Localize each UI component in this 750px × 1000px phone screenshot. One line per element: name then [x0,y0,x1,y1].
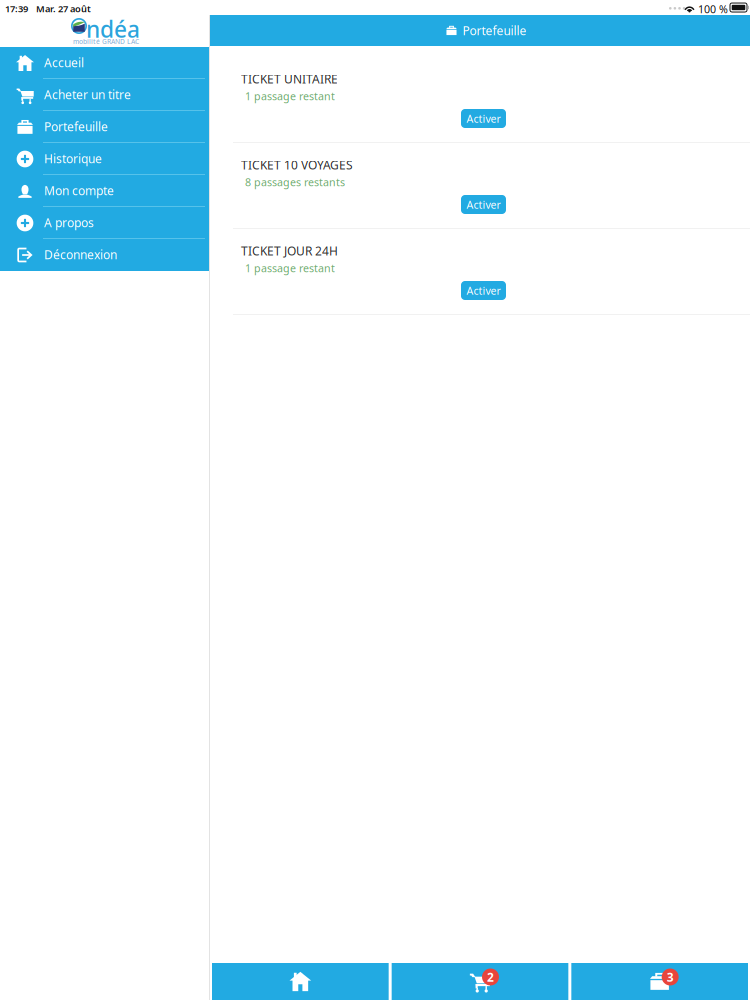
button[interactable]: A propos [0,207,209,239]
staticText: 1 passage restant [245,261,335,275]
staticText: TICKET UNITAIRE [241,71,338,87]
button[interactable]: Panier [392,963,568,1000]
staticText: Activer [466,197,500,212]
button[interactable]: Activer [461,281,506,300]
staticText: Activer [466,283,500,298]
staticText: TICKET JOUR 24H [241,243,338,259]
staticText: Mar. 27 août [36,2,91,15]
staticText: Portefeuille [44,118,108,134]
button[interactable]: Accueil [212,963,389,1000]
staticText: 17:39 [5,2,28,15]
staticText: Portefeuille [462,22,526,38]
button[interactable]: Portefeuille [0,111,209,143]
staticText: 8 passages restants [245,175,345,189]
staticText: Acheter un titre [44,86,131,102]
staticText: Déconnexion [44,246,117,262]
button[interactable]: Historique [0,143,209,175]
staticText: TICKET 10 VOYAGES [241,157,353,173]
staticText: A propos [44,214,94,230]
button[interactable]: Activer [461,195,506,214]
staticText: Activer [466,111,500,126]
staticText: 2 [487,969,494,985]
button[interactable]: Acheter un titre [0,79,209,111]
staticText: 3 [667,969,674,985]
staticText: 100 % [698,2,728,16]
staticText: 1 passage restant [245,89,335,103]
button[interactable]: Déconnexion [0,239,209,271]
button[interactable]: Mon compte [0,175,209,207]
button[interactable]: Activer [461,109,506,128]
button[interactable]: Portefeuille [571,963,748,1000]
staticText: Mon compte [44,182,114,198]
button[interactable]: Accueil [0,47,209,79]
staticText: Accueil [44,54,84,70]
staticText: Historique [44,150,102,166]
staticText: mobilité GRAND LAC [73,37,139,46]
staticText: ndéa [86,14,140,44]
